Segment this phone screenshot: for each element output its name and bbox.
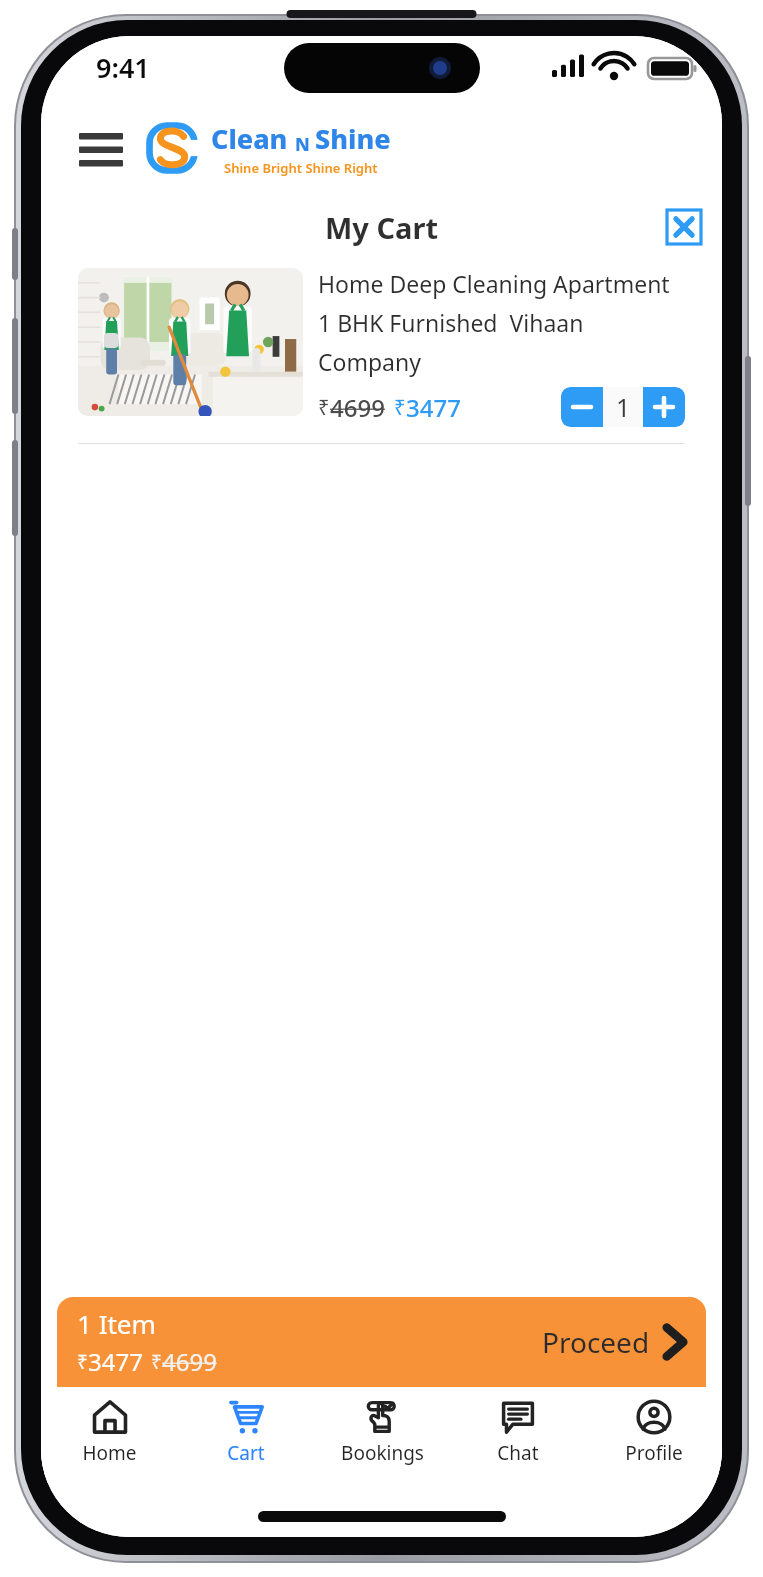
button[interactable]: Decrease quantity: [561, 387, 603, 427]
staticText: Shine: [315, 120, 391, 157]
button[interactable]: Menu: [75, 122, 127, 174]
staticText: ₹: [151, 1349, 162, 1375]
button[interactable]: Cart: [178, 1387, 314, 1483]
staticText: My Cart: [325, 208, 438, 247]
button[interactable]: Home: [41, 1387, 178, 1483]
staticText: Proceed: [542, 1323, 650, 1361]
staticText: Chat: [497, 1440, 539, 1466]
button[interactable]: Bookings: [314, 1387, 450, 1483]
button[interactable]: [78, 268, 303, 416]
button[interactable]: 1: [603, 387, 643, 427]
staticText: ₹: [394, 394, 406, 421]
button[interactable]: 1 Item: [57, 1297, 706, 1387]
staticText: Clean: [211, 120, 295, 157]
button[interactable]: Chat: [450, 1387, 586, 1483]
button[interactable]: Close: [666, 209, 702, 245]
staticText: 9:41: [96, 49, 150, 86]
staticText: 3477: [88, 1345, 143, 1378]
staticText: 1: [616, 390, 631, 424]
staticText: Shine Bright Shine Right: [224, 159, 378, 177]
button[interactable]: Increase quantity: [643, 387, 685, 427]
staticText: 1 Item: [77, 1306, 156, 1341]
staticText: 4699: [162, 1345, 217, 1378]
staticText: Bookings: [341, 1440, 424, 1466]
staticText: 3477: [406, 391, 461, 424]
staticText: ₹: [318, 394, 330, 421]
staticText: Home Deep Cleaning Apartment 1 BHK Furni…: [318, 268, 685, 377]
staticText: Home: [82, 1440, 137, 1466]
staticText: Cart: [227, 1440, 265, 1466]
staticText: 4699: [330, 391, 385, 424]
button[interactable]: Profile: [586, 1387, 722, 1483]
staticText: N: [295, 132, 315, 157]
staticText: ₹: [77, 1349, 88, 1375]
staticText: Profile: [625, 1440, 683, 1466]
